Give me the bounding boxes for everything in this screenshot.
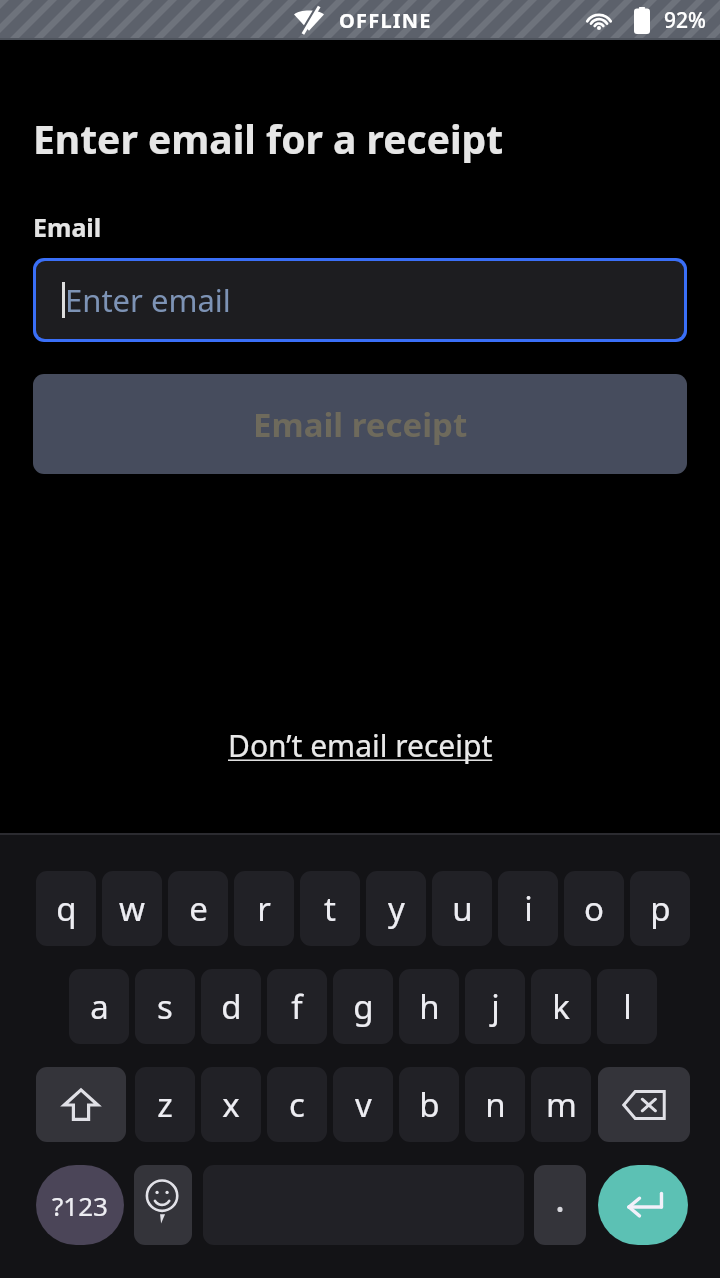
staticText: d (221, 984, 242, 1029)
staticText: y (388, 886, 405, 931)
button[interactable]: u (432, 871, 492, 946)
staticText: u (452, 886, 473, 931)
button[interactable]: ?123 (36, 1165, 124, 1245)
button[interactable]: c (267, 1067, 327, 1142)
button[interactable]: o (564, 871, 624, 946)
staticText: w (119, 886, 145, 931)
staticText: ?123 (52, 1188, 108, 1223)
button[interactable]: d (201, 969, 261, 1044)
button[interactable]: x (201, 1067, 261, 1142)
staticText: e (189, 886, 208, 931)
staticText: p (650, 886, 671, 931)
button[interactable]: g (333, 969, 393, 1044)
staticText: Enter email (65, 279, 231, 321)
staticText: Email (33, 210, 102, 244)
staticText: t (324, 886, 336, 931)
staticText: x (222, 1082, 240, 1127)
staticText: 92% (664, 6, 706, 35)
staticText: f (291, 984, 303, 1029)
staticText: n (485, 1082, 506, 1127)
button[interactable]: Email receipt (33, 374, 687, 474)
button[interactable]: l (597, 969, 657, 1044)
button[interactable]: n (465, 1067, 525, 1142)
staticText: OFFLINE (339, 7, 432, 34)
button[interactable] (534, 1165, 586, 1245)
button[interactable]: h (399, 969, 459, 1044)
staticText: i (524, 886, 533, 931)
staticText: j (491, 984, 500, 1029)
staticText: Don’t email receipt (228, 725, 493, 766)
button[interactable]: v (333, 1067, 393, 1142)
staticText: z (157, 1082, 173, 1127)
button[interactable]: e (168, 871, 228, 946)
button[interactable]: k (531, 969, 591, 1044)
staticText: r (257, 886, 271, 931)
staticText: h (419, 984, 440, 1029)
staticText: q (56, 886, 77, 931)
button[interactable]: i (498, 871, 558, 946)
button[interactable]: p (630, 871, 690, 946)
staticText: m (546, 1082, 577, 1127)
button[interactable]: j (465, 969, 525, 1044)
button[interactable]: t (300, 871, 360, 946)
button[interactable]: w (102, 871, 162, 946)
button[interactable]: r (234, 871, 294, 946)
staticText: b (419, 1082, 440, 1127)
button[interactable]: Don’t email receipt (220, 721, 501, 770)
button[interactable]: f (267, 969, 327, 1044)
staticText: c (289, 1082, 305, 1127)
button[interactable]: Shift (36, 1067, 126, 1142)
staticText: v (355, 1082, 372, 1127)
staticText: g (353, 984, 374, 1029)
staticText: Enter email for a receipt (33, 112, 504, 165)
button[interactable]: Backspace (598, 1067, 690, 1142)
staticText: o (584, 886, 604, 931)
button[interactable]: Enter email (36, 261, 684, 339)
button[interactable]: a (69, 969, 129, 1044)
staticText: s (157, 984, 173, 1029)
button[interactable]: Emoji (134, 1165, 192, 1245)
button[interactable]: s (135, 969, 195, 1044)
button[interactable]: y (366, 871, 426, 946)
staticText: a (90, 984, 109, 1029)
button[interactable]: q (36, 871, 96, 946)
button[interactable]: m (531, 1067, 591, 1142)
staticText: l (623, 984, 632, 1029)
staticText: Email receipt (253, 402, 468, 447)
button[interactable]: z (135, 1067, 195, 1142)
button[interactable]: b (399, 1067, 459, 1142)
button[interactable]: Enter (598, 1165, 688, 1245)
staticText: k (552, 984, 570, 1029)
